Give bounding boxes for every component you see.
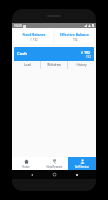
button[interactable]: Recent apps <box>73 171 80 178</box>
button[interactable]: Self Service <box>68 157 96 170</box>
staticText: Fixed Balance <box>22 32 46 37</box>
button[interactable]: New Request <box>40 157 68 170</box>
staticText: New Request <box>46 165 63 168</box>
button[interactable]: Fixed Balance <box>14 30 53 44</box>
button[interactable]: Back <box>28 171 35 178</box>
staticText: History <box>76 63 87 67</box>
staticText: Cash <box>17 51 28 57</box>
button[interactable]: Load <box>14 61 40 69</box>
button[interactable]: History <box>68 61 94 69</box>
button[interactable]: Home <box>12 157 40 170</box>
staticText: 192 <box>72 38 78 42</box>
staticText: Home <box>22 165 30 168</box>
button[interactable]: Cash <box>14 47 94 61</box>
other: New Request <box>52 159 57 164</box>
button[interactable]: Withdraw <box>41 61 67 69</box>
staticText: 10:30 <box>14 24 22 28</box>
other: Self Service <box>80 159 85 164</box>
staticText: ₹ 192 <box>30 38 38 42</box>
button[interactable]: Home <box>51 171 58 178</box>
staticText: Load <box>24 63 31 67</box>
staticText: ₹ 192 <box>81 50 91 55</box>
staticText: Withdraw <box>47 63 61 67</box>
staticText: Effective Balance <box>60 32 89 37</box>
other: Home <box>24 159 29 164</box>
button[interactable]: Effective Balance <box>55 30 94 44</box>
staticText: 192 <box>86 55 91 59</box>
staticText: Self Service <box>75 165 89 168</box>
